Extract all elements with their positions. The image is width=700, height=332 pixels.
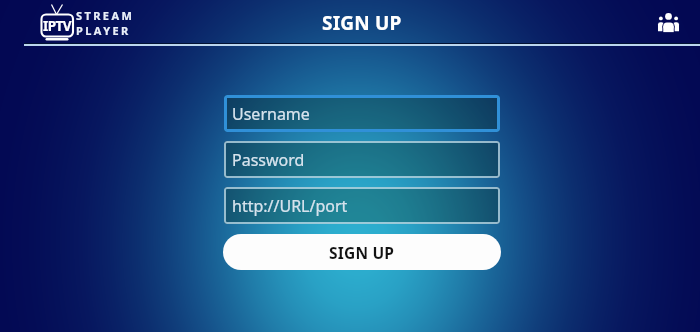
staticText: SIGN UP — [329, 242, 395, 263]
staticText: IPTV — [42, 17, 72, 35]
staticText: SIGN UP — [322, 10, 402, 36]
staticText: Password — [232, 149, 305, 171]
staticText: Username — [232, 103, 310, 125]
button[interactable]: Username — [224, 95, 500, 132]
button[interactable]: http://URL/port — [224, 187, 500, 224]
staticText: STREAM — [76, 8, 135, 23]
button[interactable]: SIGN UP — [223, 234, 501, 270]
staticText: http://URL/port — [232, 195, 348, 217]
staticText: PLAYER — [76, 23, 131, 38]
button[interactable]: Password — [224, 141, 500, 178]
button[interactable]: Users — [651, 4, 685, 38]
